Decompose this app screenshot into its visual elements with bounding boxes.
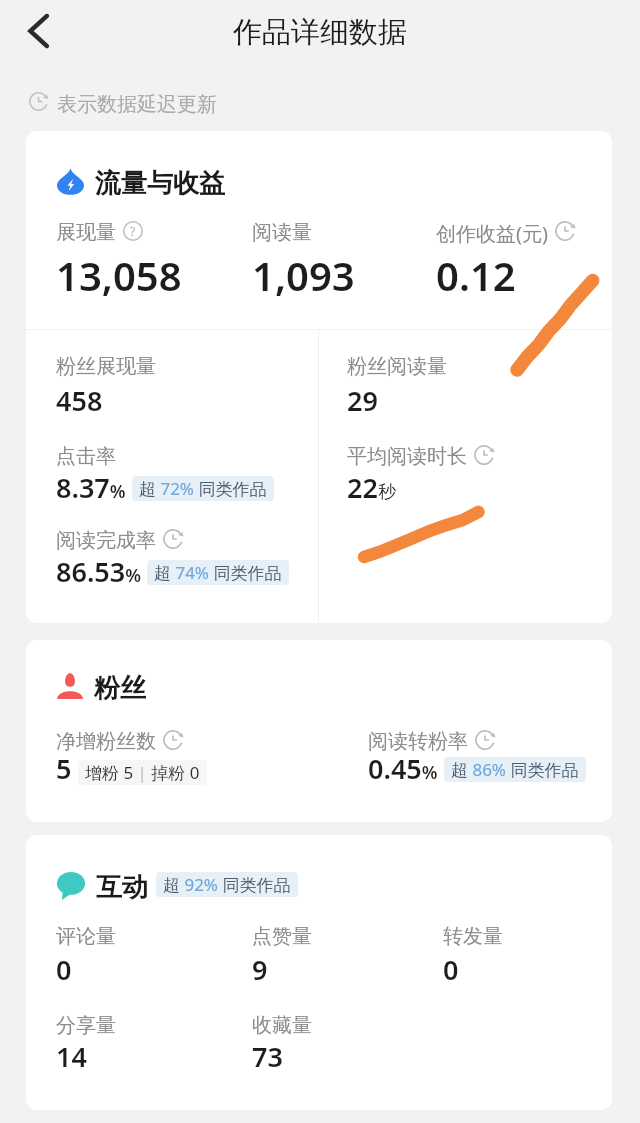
staticText: 9 bbox=[252, 951, 268, 988]
staticText: 粉丝阅读量 bbox=[347, 354, 447, 379]
button[interactable]: 超 72% 同类作品 bbox=[139, 476, 267, 501]
staticText: 创作收益(元) bbox=[436, 220, 548, 247]
staticText: 8.37% bbox=[56, 469, 126, 506]
staticText: 86.53% bbox=[56, 553, 141, 590]
staticText: 超 74% 同类作品 bbox=[154, 561, 282, 584]
button[interactable]: 点击率 8.37% bbox=[48, 435, 318, 505]
button[interactable]: 平均阅读时长 22秒 bbox=[339, 435, 599, 505]
button[interactable]: 阅读完成率 86.53% bbox=[48, 519, 318, 589]
staticText: 5 bbox=[56, 750, 72, 787]
staticText: 29 bbox=[347, 382, 378, 419]
staticText: 增粉 5 | 掉粉 0 bbox=[85, 761, 200, 784]
staticText: 展现量 bbox=[56, 220, 116, 245]
button[interactable]: 数据延迟更新 bbox=[475, 730, 495, 750]
button[interactable]: 超 74% 同类作品 bbox=[154, 560, 282, 585]
staticText: 点赞量 bbox=[252, 924, 312, 949]
staticText: 0.12 bbox=[436, 248, 516, 302]
staticText: 净增粉丝数 bbox=[56, 729, 156, 754]
staticText: 作品详细数据 bbox=[233, 14, 407, 51]
button[interactable]: 粉丝展现量 458 bbox=[48, 345, 318, 415]
button[interactable]: 数据延迟更新 bbox=[555, 221, 575, 241]
staticText: 458 bbox=[56, 382, 103, 419]
staticText: 收藏量 bbox=[252, 1013, 312, 1038]
button[interactable]: 阅读量 1,093 bbox=[244, 209, 424, 299]
button[interactable]: Back bbox=[9, 2, 67, 60]
staticText: 分享量 bbox=[56, 1013, 116, 1038]
staticText: 表示数据延迟更新 bbox=[57, 92, 217, 117]
staticText: ? bbox=[130, 223, 136, 240]
staticText: 流量与收益 bbox=[95, 167, 225, 200]
staticText: 超 72% 同类作品 bbox=[139, 477, 267, 500]
button[interactable]: 指标说明 bbox=[123, 221, 143, 241]
button[interactable]: 增粉 5 | 掉粉 0 bbox=[85, 760, 200, 785]
staticText: 转发量 bbox=[443, 924, 503, 949]
staticText: 评论量 bbox=[56, 924, 116, 949]
button[interactable]: 阅读转粉率 0.45% bbox=[360, 718, 600, 793]
staticText: 73 bbox=[252, 1038, 283, 1075]
button[interactable]: 粉丝阅读量 29 bbox=[339, 345, 599, 415]
staticText: 点击率 bbox=[56, 444, 116, 469]
staticText: 超 92% 同类作品 bbox=[163, 873, 291, 896]
staticText: 粉丝 bbox=[94, 672, 146, 705]
staticText: 0 bbox=[443, 951, 459, 988]
button[interactable]: 数据延迟更新 bbox=[474, 445, 494, 465]
button[interactable]: 创作收益(元) 0.12 bbox=[428, 209, 598, 299]
button[interactable]: 数据延迟更新 bbox=[163, 730, 183, 750]
staticText: 0.45% bbox=[368, 750, 438, 787]
staticText: 阅读量 bbox=[252, 220, 312, 245]
staticText: 14 bbox=[56, 1038, 87, 1075]
staticText: 1,093 bbox=[252, 248, 355, 302]
button[interactable]: 展现量 13,058 bbox=[48, 209, 238, 299]
staticText: 互动 bbox=[96, 871, 148, 904]
button[interactable]: 数据延迟更新 bbox=[163, 529, 183, 549]
staticText: 粉丝展现量 bbox=[56, 354, 156, 379]
button[interactable]: 净增粉丝数 5 bbox=[48, 718, 338, 793]
staticText: 平均阅读时长 bbox=[347, 444, 467, 469]
button[interactable]: 超 86% 同类作品 bbox=[451, 757, 579, 782]
staticText: 13,058 bbox=[56, 248, 182, 302]
button[interactable]: 超 92% 同类作品 bbox=[163, 872, 291, 897]
staticText: 超 86% 同类作品 bbox=[451, 758, 579, 781]
staticText: 0 bbox=[56, 951, 72, 988]
staticText: 阅读转粉率 bbox=[368, 729, 468, 754]
staticText: 22秒 bbox=[347, 469, 396, 506]
staticText: 阅读完成率 bbox=[56, 528, 156, 553]
